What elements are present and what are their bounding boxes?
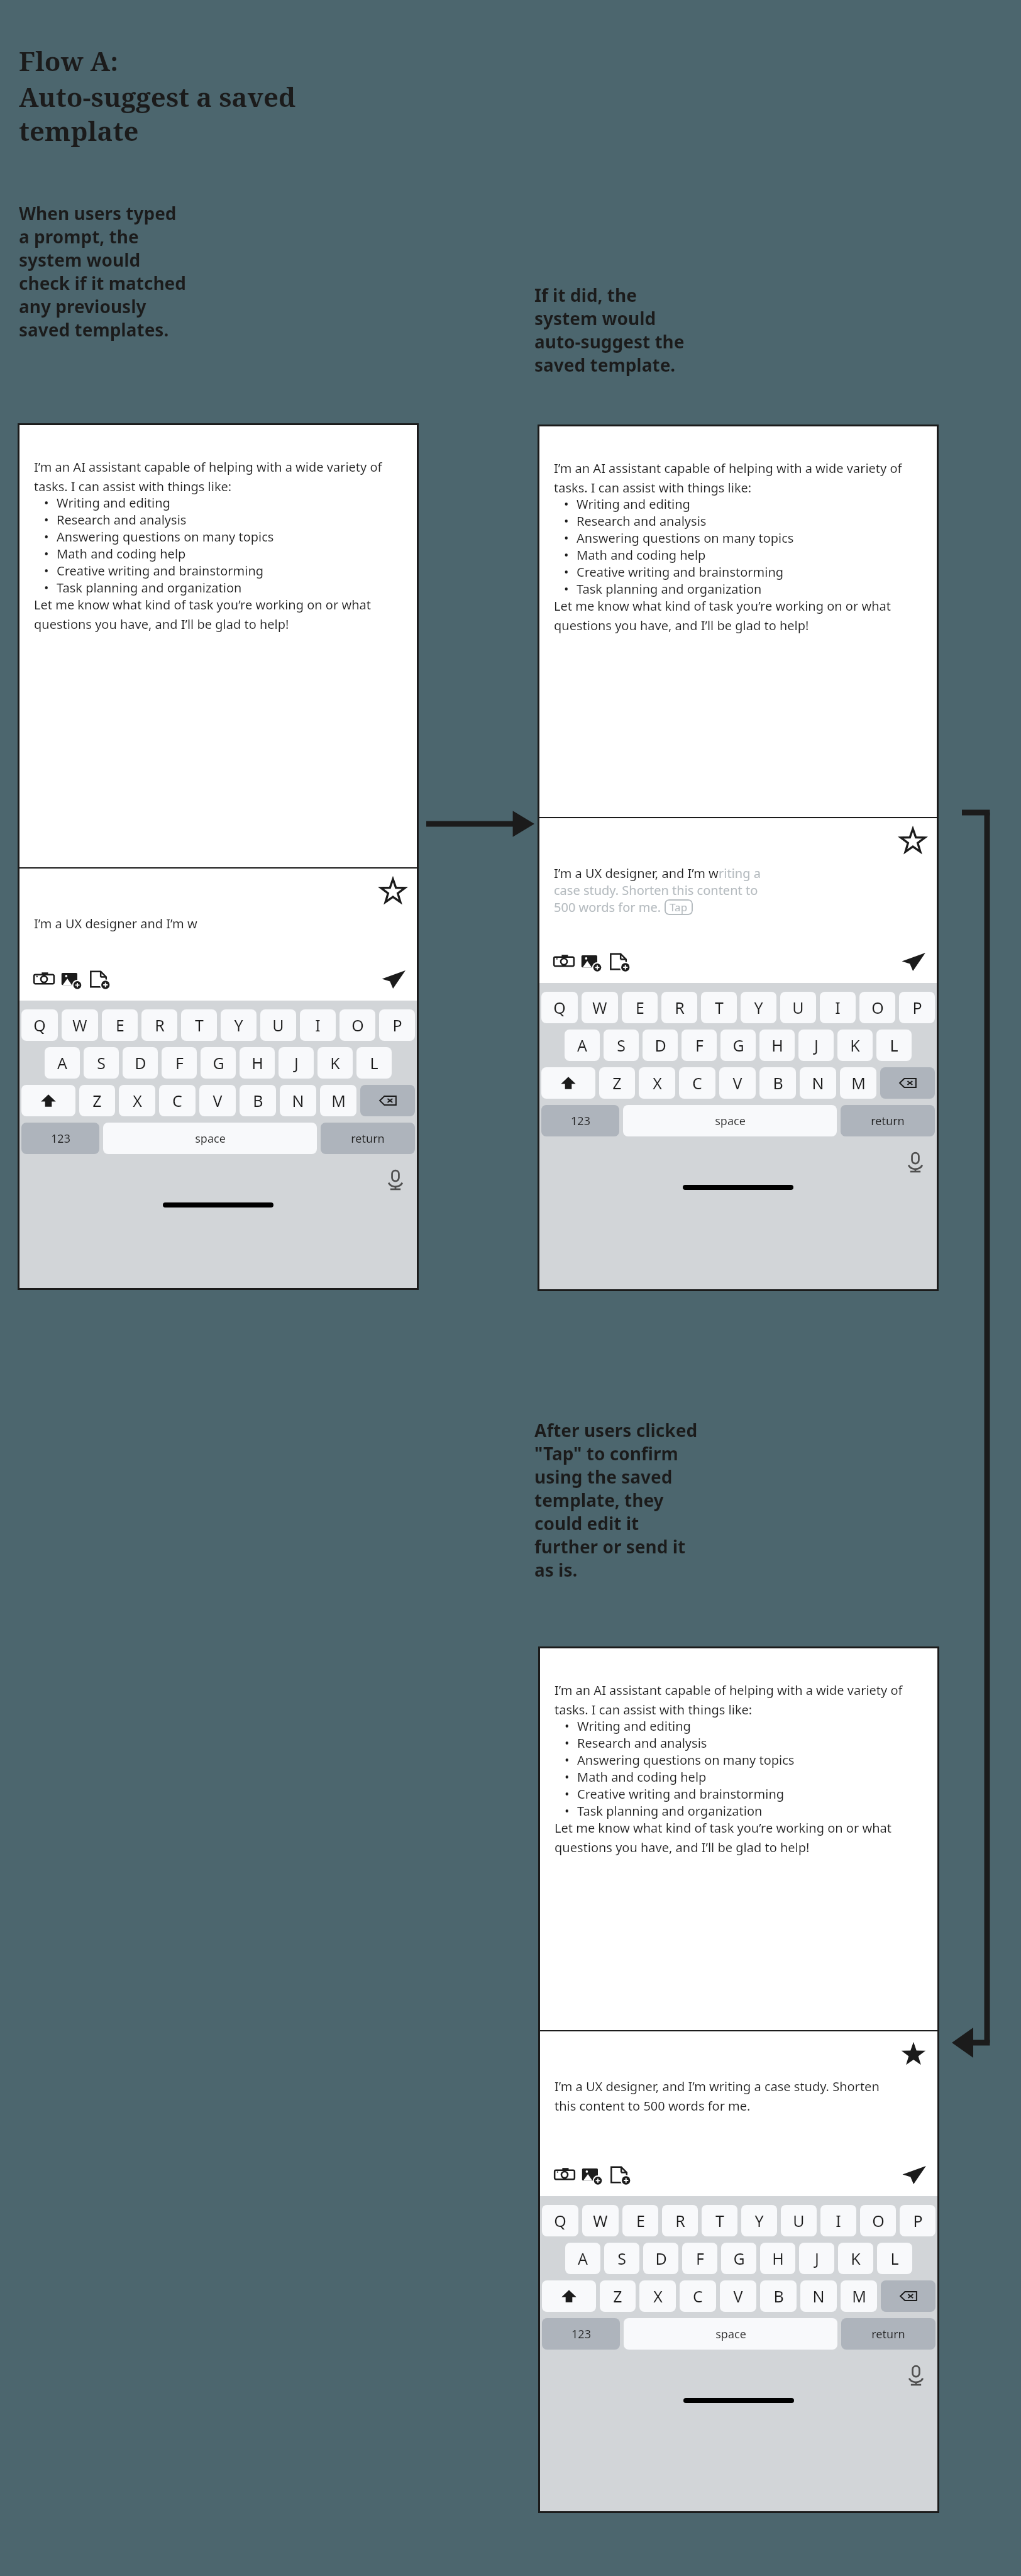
button[interactable]: X	[639, 2280, 676, 2312]
button[interactable]: Y	[221, 1009, 257, 1041]
button[interactable]: Backspace	[880, 1067, 935, 1099]
button[interactable]: W	[582, 992, 618, 1023]
button[interactable]: J	[279, 1047, 314, 1079]
button[interactable]: S	[604, 1030, 639, 1061]
button[interactable]: space	[624, 2318, 837, 2350]
button[interactable]: H	[760, 2243, 795, 2274]
button[interactable]: S	[84, 1047, 119, 1079]
button[interactable]: F	[682, 1030, 717, 1061]
button[interactable]: Z	[599, 1067, 635, 1099]
button[interactable]: A	[565, 1030, 600, 1061]
button[interactable]: U	[781, 2205, 817, 2236]
button[interactable]: Q	[541, 992, 578, 1023]
button[interactable]: F	[162, 1047, 197, 1079]
button[interactable]: I	[820, 992, 856, 1023]
button[interactable]: T	[181, 1009, 217, 1041]
button[interactable]: R	[141, 1009, 177, 1041]
button[interactable]: return	[841, 2318, 935, 2350]
button[interactable]: U	[260, 1009, 296, 1041]
button[interactable]: E	[102, 1009, 138, 1041]
button[interactable]: L	[876, 1030, 912, 1061]
button[interactable]: B	[759, 1067, 796, 1099]
button[interactable]: Saved template	[900, 2041, 927, 2068]
button[interactable]: Z	[600, 2280, 636, 2312]
button[interactable]: I	[300, 1009, 336, 1041]
button[interactable]: Z	[79, 1085, 115, 1116]
button[interactable]: B	[760, 2280, 797, 2312]
button[interactable]: return	[841, 1105, 935, 1136]
button[interactable]: O	[859, 992, 895, 1023]
button[interactable]: B	[240, 1085, 276, 1116]
button[interactable]: return	[321, 1123, 415, 1154]
button[interactable]: M	[840, 1067, 876, 1099]
button[interactable]: M	[320, 1085, 356, 1116]
button[interactable]: Q	[542, 2205, 578, 2236]
button[interactable]: Shift	[21, 1085, 75, 1116]
button[interactable]: K	[838, 2243, 873, 2274]
button[interactable]: O	[339, 1009, 375, 1041]
button[interactable]: Backspace	[881, 2280, 935, 2312]
button[interactable]: T	[701, 992, 737, 1023]
button[interactable]: N	[280, 1085, 316, 1116]
button[interactable]: 123	[542, 2318, 620, 2350]
button[interactable]: Shift	[542, 2280, 596, 2312]
button[interactable]: Add image	[580, 950, 603, 973]
button[interactable]: R	[661, 992, 697, 1023]
button[interactable]: K	[317, 1047, 353, 1079]
button[interactable]: Take photo	[553, 950, 575, 973]
button[interactable]: H	[759, 1030, 795, 1061]
button[interactable]: J	[799, 2243, 834, 2274]
button[interactable]: C	[159, 1085, 196, 1116]
button[interactable]: Save template	[380, 879, 406, 905]
button[interactable]: Send	[380, 965, 407, 993]
button[interactable]: G	[721, 2243, 756, 2274]
button[interactable]: E	[622, 992, 658, 1023]
button[interactable]: L	[356, 1047, 392, 1079]
button[interactable]: Add file	[609, 2163, 631, 2186]
button[interactable]: V	[719, 1067, 756, 1099]
button[interactable]: U	[780, 992, 816, 1023]
button[interactable]: N	[800, 2280, 837, 2312]
button[interactable]: D	[123, 1047, 158, 1079]
button[interactable]: 123	[21, 1123, 99, 1154]
button[interactable]: X	[639, 1067, 675, 1099]
button[interactable]: Q	[21, 1009, 58, 1041]
button[interactable]: Add image	[60, 968, 83, 991]
button[interactable]: Add file	[88, 968, 111, 991]
button[interactable]: Y	[741, 2205, 777, 2236]
button[interactable]: V	[199, 1085, 236, 1116]
button[interactable]: N	[800, 1067, 836, 1099]
button[interactable]: Dictation	[385, 1169, 406, 1191]
button[interactable]: T	[702, 2205, 737, 2236]
button[interactable]: L	[877, 2243, 912, 2274]
button[interactable]: Take photo	[553, 2163, 576, 2186]
button[interactable]: Tap	[665, 899, 693, 915]
button[interactable]: P	[379, 1009, 415, 1041]
button[interactable]: M	[841, 2280, 877, 2312]
button[interactable]: K	[837, 1030, 873, 1061]
button[interactable]: Y	[741, 992, 776, 1023]
button[interactable]: C	[680, 2280, 716, 2312]
button[interactable]: Add image	[581, 2163, 604, 2186]
button[interactable]: space	[623, 1105, 837, 1136]
button[interactable]: Backspace	[360, 1085, 415, 1116]
button[interactable]: space	[103, 1123, 317, 1154]
button[interactable]: A	[565, 2243, 600, 2274]
button[interactable]: Dictation	[905, 1152, 926, 1173]
button[interactable]: J	[798, 1030, 834, 1061]
button[interactable]: D	[643, 2243, 678, 2274]
button[interactable]: F	[682, 2243, 717, 2274]
button[interactable]: D	[643, 1030, 678, 1061]
button[interactable]: A	[45, 1047, 80, 1079]
button[interactable]: V	[720, 2280, 756, 2312]
button[interactable]: W	[62, 1009, 98, 1041]
button[interactable]: Shift	[541, 1067, 595, 1099]
button[interactable]: X	[119, 1085, 155, 1116]
button[interactable]: W	[582, 2205, 619, 2236]
button[interactable]: Add file	[608, 950, 631, 973]
button[interactable]: Dictation	[905, 2365, 927, 2386]
button[interactable]: Take photo	[33, 968, 55, 991]
button[interactable]: I	[820, 2205, 856, 2236]
button[interactable]: Send	[900, 2161, 928, 2189]
button[interactable]: R	[662, 2205, 698, 2236]
